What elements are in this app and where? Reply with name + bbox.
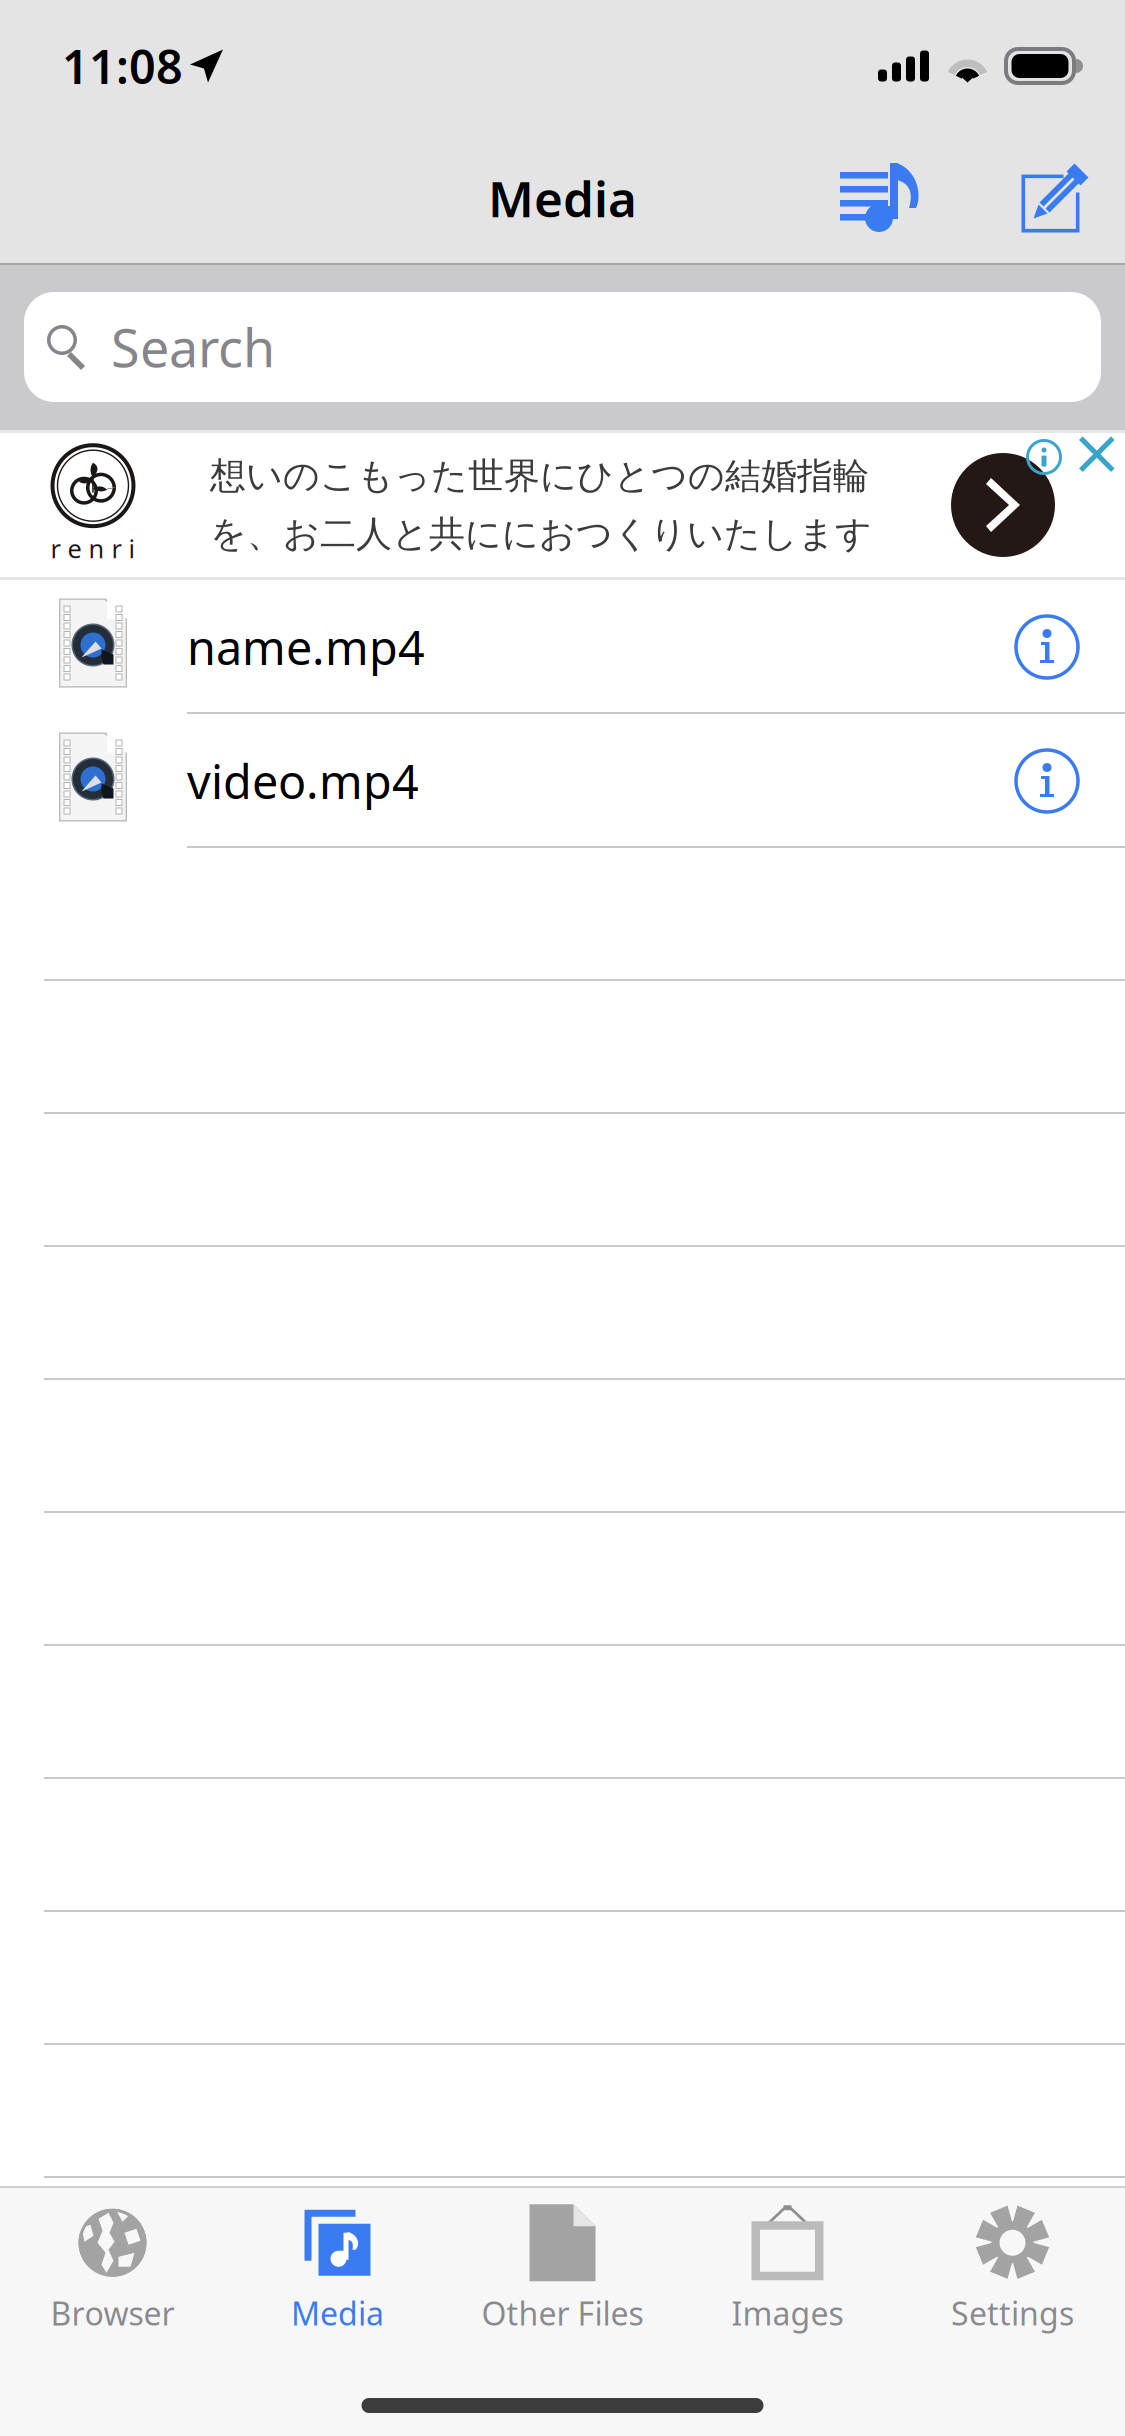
button[interactable]: Playlists [769,132,989,264]
staticText: 11:08 [62,35,183,97]
staticText: name.mp4 [187,616,425,678]
button[interactable]: Ad choices [1025,438,1063,476]
button[interactable]: Media [225,2185,450,2342]
button[interactable]: Compose [989,132,1121,264]
button[interactable]: Settings [900,2185,1125,2342]
button[interactable]: Info about name.mp4 [1014,614,1080,680]
staticText: Other Files [481,2292,643,2334]
staticText: Media [488,165,637,231]
button[interactable]: Images [675,2185,900,2342]
button[interactable]: Open advertisement [951,453,1055,557]
button[interactable]: Close ad [1063,438,1117,476]
staticText: Media [291,2292,384,2334]
staticText: Browser [50,2292,174,2334]
button[interactable]: Search [24,292,1101,402]
button[interactable]: Other Files [450,2185,675,2342]
staticText: Settings [951,2292,1074,2334]
staticText: Search [111,312,275,382]
staticText: 想いのこもった世界にひとつの結婚指輪 [210,454,869,498]
button[interactable]: video.mp4 [0,714,1125,848]
button[interactable]: Info about video.mp4 [1014,748,1080,814]
button[interactable]: r e n r i [0,430,1125,580]
staticText: r e n r i [50,532,135,565]
button[interactable]: name.mp4 [0,580,1125,714]
staticText: を、お二人と共ににおつくりいたします [210,512,872,556]
staticText: Images [731,2292,843,2334]
staticText: video.mp4 [187,750,419,812]
button[interactable]: Browser [0,2185,225,2342]
